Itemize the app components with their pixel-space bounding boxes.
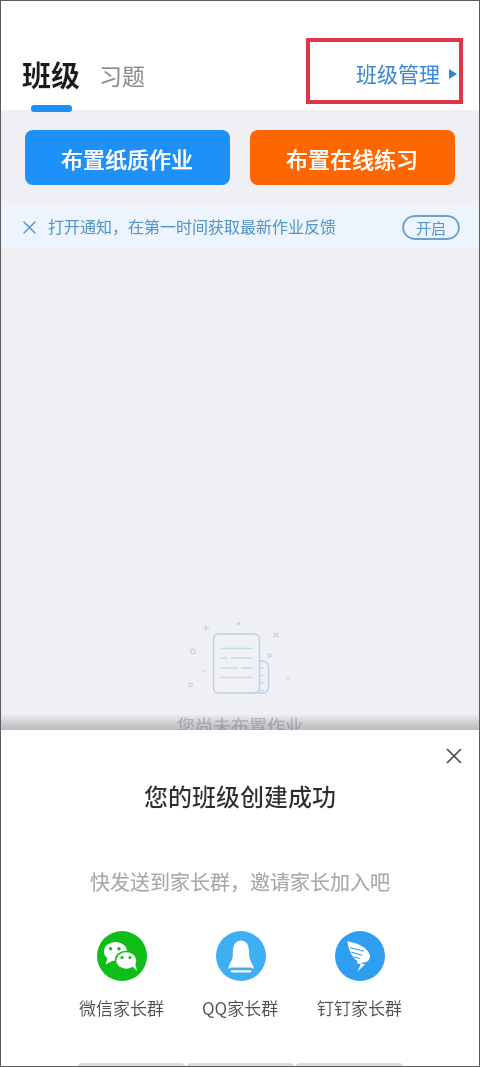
staticText: 您的班级创建成功: [0, 778, 480, 813]
staticText: 快发送到家长群，邀请家长加入吧: [0, 867, 480, 896]
staticText: 开启: [416, 217, 447, 239]
staticText: 习题: [99, 58, 145, 91]
button[interactable]: More share option: [78, 1063, 185, 1067]
button[interactable]: 布置纸质作业: [25, 130, 230, 185]
button[interactable]: 布置在线练习: [250, 130, 455, 185]
staticText: 布置纸质作业: [61, 142, 194, 174]
staticText: 布置在线练习: [286, 142, 419, 174]
button[interactable]: More share option: [296, 1063, 403, 1067]
staticText: 班级管理: [356, 58, 440, 88]
staticText: 微信家长群: [79, 995, 164, 1020]
button[interactable]: 班级管理: [356, 58, 457, 88]
button[interactable]: QQ家长群: [181, 931, 300, 1020]
button[interactable]: 班级: [22, 53, 81, 112]
staticText: 打开通知，在第一时间获取最新作业反馈: [48, 214, 337, 237]
button[interactable]: Dismiss notice: [12, 210, 46, 244]
button[interactable]: 习题: [99, 58, 145, 91]
staticText: QQ家长群: [202, 995, 279, 1020]
staticText: 钉钉家长群: [317, 995, 402, 1020]
button[interactable]: 开启: [402, 215, 460, 240]
button[interactable]: More share option: [187, 1063, 294, 1067]
staticText: 班级: [22, 53, 81, 95]
button[interactable]: 钉钉家长群: [300, 931, 419, 1020]
staticText: 您尚未布置作业: [0, 712, 480, 738]
button[interactable]: 微信家长群: [62, 931, 181, 1020]
button[interactable]: Close: [435, 737, 473, 775]
